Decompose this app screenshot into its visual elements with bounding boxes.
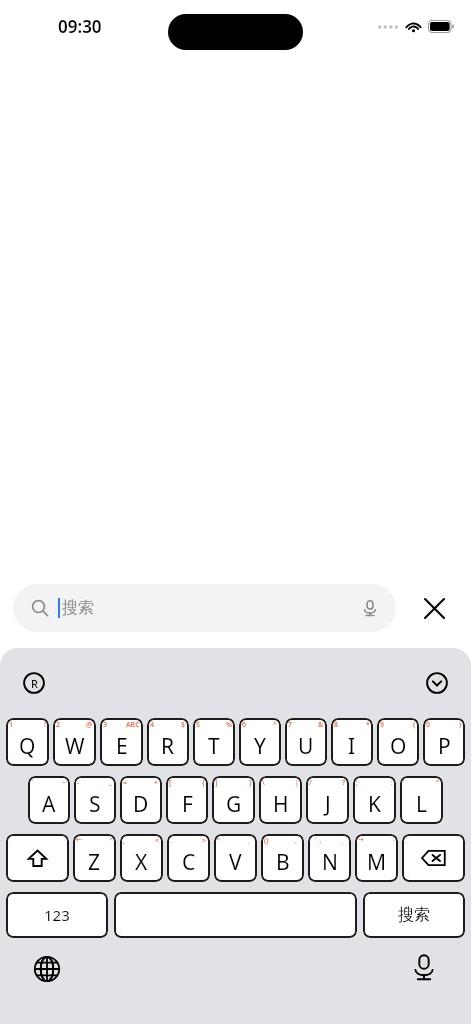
button[interactable]: “ — [214, 834, 257, 882]
button[interactable]: → — [355, 834, 398, 882]
staticText: 7 — [288, 720, 293, 730]
staticText: ~ — [62, 778, 67, 788]
button[interactable]: 搜索 — [363, 892, 465, 938]
staticText: ) — [459, 720, 462, 730]
staticText: { — [202, 778, 205, 788]
staticText: } — [249, 778, 252, 788]
staticText: [ — [169, 778, 172, 788]
button[interactable]: 2 — [53, 718, 96, 766]
button[interactable]: 9 — [377, 718, 419, 766]
staticText: . — [170, 836, 172, 846]
staticText: ( — [413, 720, 416, 730]
staticText: K — [368, 790, 381, 819]
staticText: M — [367, 848, 387, 877]
staticText: Z — [88, 848, 101, 877]
button[interactable]: 搜索 — [13, 584, 396, 632]
button[interactable]: 0 — [423, 718, 465, 766]
staticText: () — [264, 836, 269, 846]
staticText: - — [77, 778, 80, 788]
button[interactable]: ' — [400, 776, 443, 824]
staticText: _ — [109, 778, 113, 788]
staticText: J — [325, 790, 331, 819]
staticText: ' — [403, 778, 405, 788]
button[interactable]: 8 — [331, 718, 373, 766]
staticText: ← — [76, 836, 82, 844]
staticText: + — [154, 778, 159, 788]
button[interactable]: , — [120, 834, 163, 882]
button[interactable]: Hide keyboard — [421, 667, 453, 699]
button[interactable]: 3 — [100, 718, 143, 766]
button[interactable]: = — [120, 776, 162, 824]
button[interactable]: / — [306, 776, 349, 824]
button[interactable]: ` — [28, 776, 70, 824]
staticText: R — [161, 732, 175, 761]
staticText: V — [229, 848, 242, 877]
button[interactable]: \ — [259, 776, 302, 824]
staticText: A — [42, 790, 56, 819]
staticText: U — [298, 732, 314, 761]
staticText: ` — [31, 778, 34, 788]
staticText: 0 — [426, 720, 431, 730]
staticText: & — [318, 720, 324, 730]
staticText: S — [89, 790, 101, 819]
staticText: D — [133, 790, 149, 819]
button[interactable]: 4 — [147, 718, 189, 766]
staticText: ABC — [126, 720, 140, 730]
button[interactable]: . — [167, 834, 210, 882]
staticText: ? — [342, 778, 346, 788]
button[interactable]: 6 — [239, 718, 281, 766]
button[interactable]: 1 — [6, 718, 49, 766]
staticText: < — [155, 836, 160, 846]
button[interactable]: ] — [212, 776, 255, 824]
button[interactable]: 7 — [285, 718, 327, 766]
staticText: R — [31, 676, 38, 691]
staticText: ! — [44, 720, 46, 730]
button[interactable]: Switch language — [30, 952, 64, 986]
button[interactable]: Input method — [18, 667, 50, 699]
staticText: Y — [254, 732, 266, 761]
button[interactable]: Backspace — [402, 834, 465, 882]
staticText: 4 — [150, 720, 155, 730]
button[interactable]: - — [74, 776, 116, 824]
staticText: T — [208, 732, 220, 761]
staticText: 3 — [103, 720, 108, 730]
staticText: : — [391, 778, 393, 788]
button[interactable]: 123 — [6, 892, 108, 938]
staticText: 5 — [196, 720, 201, 730]
button[interactable]: [ — [166, 776, 208, 824]
staticText: ] — [215, 778, 218, 788]
staticText: O — [390, 732, 407, 761]
staticText: 搜索 — [62, 598, 94, 618]
staticText: 、 — [341, 836, 348, 845]
staticText: ^ — [273, 720, 278, 730]
staticText: 8 — [334, 720, 339, 730]
staticText: H — [273, 790, 289, 819]
button[interactable]: 「」 — [308, 834, 351, 882]
button[interactable]: ; — [353, 776, 396, 824]
staticText: * — [366, 720, 370, 730]
button[interactable]: ← — [73, 834, 116, 882]
staticText: P — [438, 732, 451, 761]
button[interactable]: () — [261, 834, 304, 882]
staticText: 1 — [9, 720, 14, 730]
staticText: % — [226, 720, 232, 730]
staticText: 。 — [294, 836, 301, 845]
staticText: Q — [19, 732, 36, 761]
staticText: E — [116, 732, 128, 761]
button[interactable]: Voice input — [407, 950, 441, 984]
button[interactable]: Close — [410, 584, 458, 632]
staticText: | — [295, 778, 299, 788]
button[interactable]: 5 — [193, 718, 235, 766]
staticText: / — [309, 778, 312, 788]
staticText: B — [276, 848, 290, 877]
button[interactable]: Shift — [6, 834, 69, 882]
staticText: \ — [262, 778, 265, 788]
staticText: F — [182, 790, 193, 819]
staticText: X — [135, 848, 148, 877]
staticText: 123 — [44, 905, 70, 925]
staticText: 、 — [247, 836, 254, 845]
button[interactable]: Space — [114, 892, 357, 938]
staticText: 搜索 — [398, 905, 430, 925]
staticText: I — [348, 732, 356, 761]
button[interactable]: Voice input — [350, 588, 390, 628]
